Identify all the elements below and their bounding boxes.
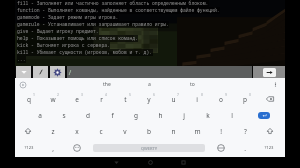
button[interactable]: v [113,123,137,139]
button[interactable]: n [161,123,185,139]
staticText: 1 [33,92,35,97]
staticText: d [86,111,90,120]
staticText: 0 [249,92,251,97]
button[interactable]: Insert slash [33,66,48,78]
staticText: c [99,127,103,136]
button[interactable]: the [85,78,128,91]
button[interactable]: ! [209,123,233,139]
button[interactable]: r [89,91,113,107]
staticText: u [171,95,176,104]
button[interactable]: More options [269,78,282,91]
staticText: the [103,81,111,88]
staticText: kill - Убивает сущности (игроков, мобов … [17,49,153,55]
staticText: v [123,127,127,136]
staticText: help - Показывает помощь или список кома… [17,35,138,41]
staticText: ... [17,56,26,62]
button[interactable]: Show commands [16,66,31,78]
button[interactable]: / [67,66,252,78]
button[interactable]: Backspace [257,91,283,107]
button[interactable]: s [52,107,76,123]
staticText: fill - Заполняет или частично заполняет … [17,0,209,6]
button[interactable]: m [185,123,209,139]
staticText: ?123 [264,145,274,151]
staticText: h [158,111,163,120]
button[interactable]: f [100,107,124,123]
button[interactable]: Recent apps [177,157,189,168]
staticText: ? [244,127,247,136]
button[interactable]: u [161,91,185,107]
button[interactable]: y [137,91,161,107]
staticText: to [190,81,195,88]
staticText: f [111,111,114,120]
button[interactable]: a [28,107,52,123]
button[interactable]: Settings [50,66,65,78]
button[interactable]: ?123 [257,139,281,157]
button[interactable]: e [65,91,89,107]
staticText: k [206,111,210,120]
button[interactable]: ? [233,123,257,139]
staticText: function - Выполняет команды, найденные … [17,7,220,13]
button[interactable]: x [65,123,89,139]
button[interactable]: g [124,107,148,123]
staticText: 4 [105,92,107,97]
button[interactable]: p [233,91,257,107]
staticText: l [231,111,233,120]
staticText: / [68,68,72,77]
button[interactable]: a [128,78,171,91]
button[interactable]: Home [144,157,156,168]
staticText: kick - Выгоняет игрока с сервера. [17,42,110,48]
button[interactable]: j [172,107,196,123]
button[interactable]: Emoji [65,139,89,157]
staticText: gamerule - Устанавливает или запрашивает… [17,21,169,27]
staticText: 6 [153,92,155,97]
button[interactable]: Clipboard [16,78,29,91]
button[interactable]: d [76,107,100,123]
staticText: 9 [225,92,227,97]
staticText: . [244,144,246,153]
staticText: n [171,127,176,136]
staticText: r [100,95,103,104]
button[interactable]: Language [209,139,233,157]
button[interactable]: z [41,123,65,139]
button[interactable]: Back [110,157,122,168]
staticText: j [183,111,185,120]
button[interactable]: QWERTY [93,144,205,152]
staticText: 8 [201,92,203,97]
button[interactable]: l [220,107,244,123]
staticText: m [194,127,201,136]
button[interactable]: c [89,123,113,139]
button[interactable]: t [113,91,137,107]
button[interactable]: , [41,139,65,157]
button[interactable]: Enter [244,107,283,123]
staticText: s [62,111,66,120]
button[interactable]: Send [253,66,285,78]
staticText: ! [220,127,222,136]
button[interactable]: o [209,91,233,107]
button[interactable]: b [137,123,161,139]
staticText: x [75,127,79,136]
staticText: i [196,95,198,104]
button[interactable]: i [185,91,209,107]
button[interactable]: q [17,91,41,107]
staticText: ?123 [24,145,34,151]
staticText: a [148,81,151,88]
staticText: e [75,95,79,104]
button[interactable]: . [233,139,257,157]
button[interactable]: to [171,78,214,91]
button[interactable]: k [196,107,220,123]
staticText: w [50,95,56,104]
staticText: 2 [57,92,59,97]
staticText: 5 [129,92,131,97]
staticText: 3 [81,92,83,97]
button[interactable]: w [41,91,65,107]
staticText: t [124,95,127,104]
staticText: give - Выдает игроку предмет. [17,28,99,34]
button[interactable]: ?123 [17,139,41,157]
staticText: q [27,95,31,104]
staticText: g [134,111,138,120]
button[interactable]: Shift [15,123,41,139]
staticText: o [219,95,223,104]
staticText: z [51,127,55,136]
button[interactable]: Shift [257,123,283,139]
button[interactable]: h [148,107,172,123]
